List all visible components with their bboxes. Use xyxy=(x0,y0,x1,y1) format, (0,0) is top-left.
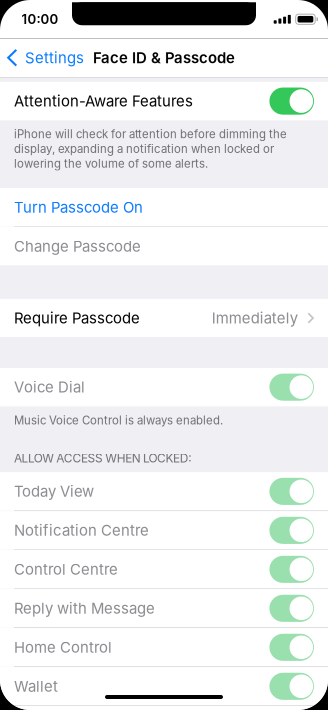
staticText: Face ID & Passcode xyxy=(93,49,235,67)
button[interactable]: Voice Dial xyxy=(0,368,328,406)
button[interactable]: Attention-Aware Features xyxy=(0,82,328,120)
button[interactable]: Settings xyxy=(0,38,91,77)
staticText: Attention-Aware Features xyxy=(14,92,193,110)
button[interactable]: Return Missed Calls xyxy=(0,706,328,710)
staticText: Immediately xyxy=(212,309,298,327)
staticText: Require Passcode xyxy=(14,309,140,327)
button[interactable]: Reply with Message xyxy=(0,589,328,628)
staticText: Turn Passcode On xyxy=(14,198,143,216)
staticText: Today View xyxy=(14,482,94,500)
button[interactable]: Wallet xyxy=(0,667,328,705)
staticText: Settings xyxy=(25,49,84,67)
staticText: Wallet xyxy=(14,677,58,695)
staticText: Change Passcode xyxy=(14,237,141,255)
button[interactable]: Home Control xyxy=(0,628,328,667)
button[interactable]: Today View xyxy=(0,472,328,511)
staticText: Notification Centre xyxy=(14,521,149,539)
button[interactable]: Require Passcode xyxy=(0,299,328,337)
staticText: Reply with Message xyxy=(14,599,155,617)
button[interactable]: Turn Passcode On xyxy=(0,188,328,227)
button[interactable]: Control Centre xyxy=(0,550,328,589)
staticText: Home Control xyxy=(14,638,112,656)
staticText: Music Voice Control is always enabled. xyxy=(14,413,223,427)
button[interactable]: Notification Centre xyxy=(0,511,328,550)
staticText: ALLOW ACCESS WHEN LOCKED: xyxy=(14,451,191,465)
staticText: Control Centre xyxy=(14,560,118,578)
staticText: Voice Dial xyxy=(14,378,85,396)
button[interactable]: Change Passcode xyxy=(0,227,328,266)
staticText: iPhone will check for attention before d… xyxy=(14,127,287,171)
staticText: 10:00 xyxy=(21,11,58,27)
